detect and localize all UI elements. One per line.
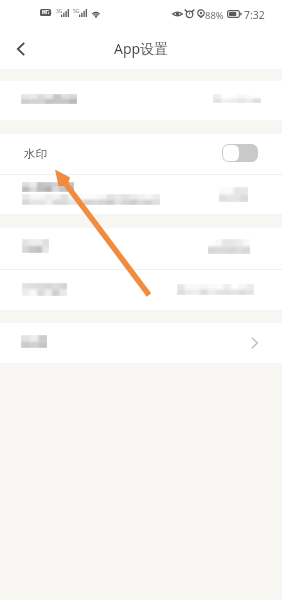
button[interactable] [0, 81, 282, 120]
staticText: 3G [56, 8, 63, 15]
button[interactable]: Watermark toggle [222, 144, 258, 162]
staticText: HD [42, 9, 50, 16]
staticText: 水印 [24, 147, 47, 161]
button[interactable] [0, 175, 282, 214]
button[interactable] [0, 323, 282, 363]
button[interactable]: Back [6, 34, 36, 64]
staticText: 88% [205, 9, 224, 22]
staticText: App设置 [114, 39, 169, 58]
button[interactable] [0, 270, 282, 310]
button[interactable]: 水印 [0, 134, 282, 174]
button[interactable] [0, 228, 282, 269]
staticText: 5G [73, 8, 80, 15]
staticText: 7:32 [244, 8, 265, 22]
